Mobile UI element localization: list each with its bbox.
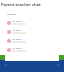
button[interactable]: Ms. Rivera bbox=[7, 27, 57, 36]
staticText: Parent-teacher chat bbox=[1, 2, 41, 7]
staticText: Messages bbox=[7, 13, 17, 16]
button[interactable]: Ms. Rivera bbox=[7, 36, 57, 45]
staticText: Ms. Rivera bbox=[12, 38, 22, 41]
staticText: Ms. Rivera bbox=[12, 20, 22, 23]
staticText: Ms. Rivera bbox=[12, 29, 22, 32]
button[interactable]: Ms. Rivera bbox=[7, 18, 57, 27]
button[interactable]: Ms. Rivera bbox=[7, 45, 57, 54]
staticText: Ms. Rivera bbox=[12, 47, 22, 50]
